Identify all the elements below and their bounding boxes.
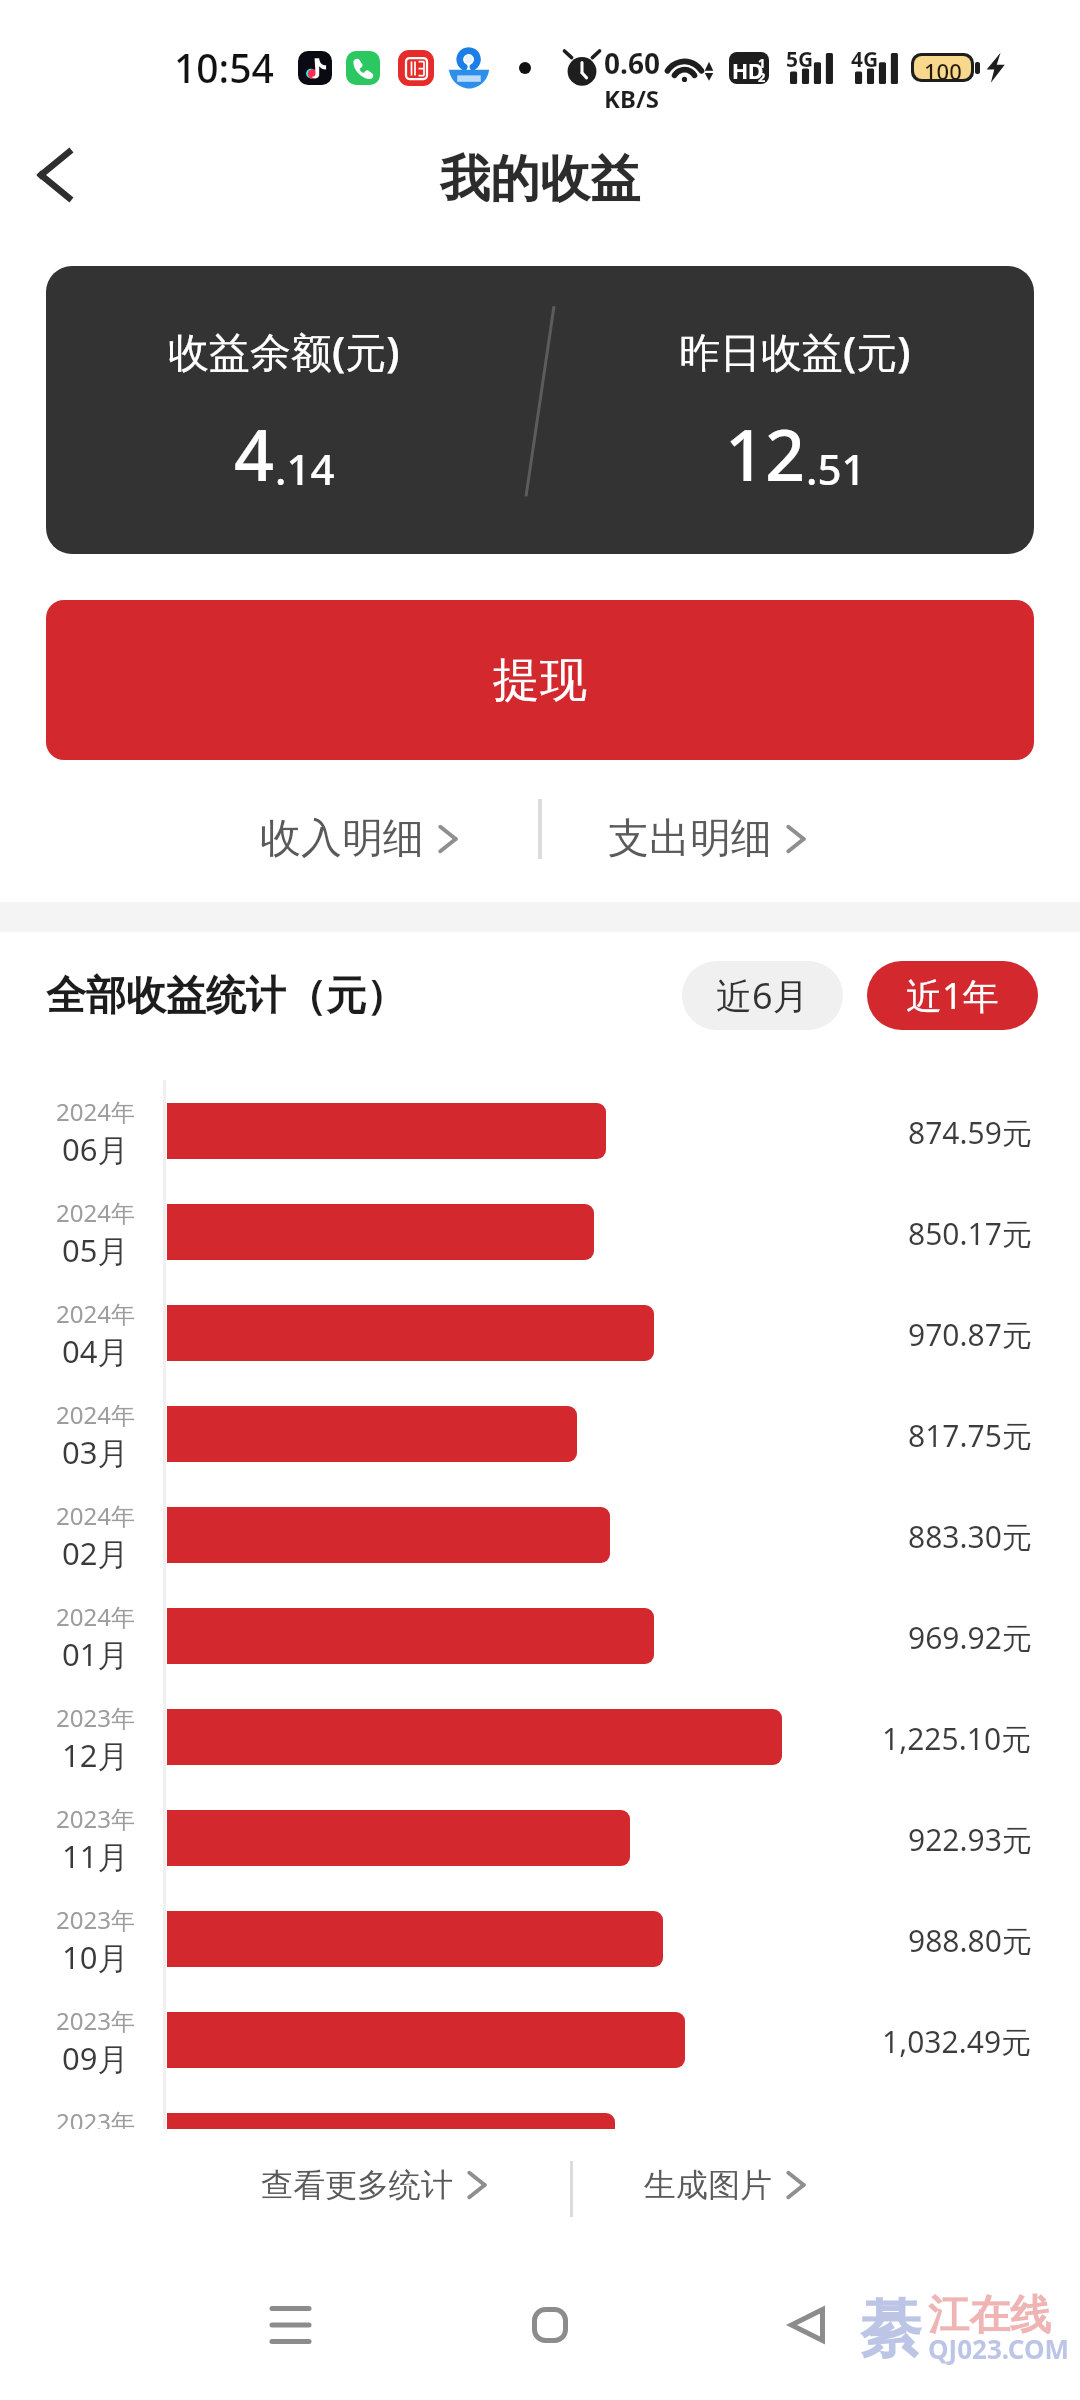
staticText: 4G [851, 45, 879, 74]
staticText: 2024年 [56, 1196, 135, 1229]
staticText: 100 [924, 56, 962, 79]
staticText: HD [732, 57, 764, 84]
button[interactable]: 生成图片 [628, 2153, 824, 2217]
staticText: 生成图片 [644, 2165, 772, 2205]
staticText: 02月 [62, 1532, 129, 1574]
staticText: 05月 [62, 1229, 129, 1271]
staticText: 近1年 [906, 971, 999, 1020]
staticText: 12月 [62, 1734, 129, 1776]
staticText: 970.87元 [908, 1314, 1032, 1355]
staticText: 1,032.49元 [882, 2021, 1032, 2062]
staticText: 4 [234, 406, 275, 501]
button[interactable]: 查看更多统计 [245, 2153, 505, 2217]
staticText: 5G [786, 45, 814, 74]
staticText: KB/S [604, 82, 660, 115]
staticText: 昨日收益(元) [679, 323, 911, 379]
staticText: 06月 [62, 1128, 129, 1170]
button[interactable]: Recent apps [240, 2275, 340, 2375]
staticText: 2 [758, 68, 766, 84]
staticText: 1,225.10元 [882, 1718, 1032, 1759]
staticText: 查看更多统计 [261, 2165, 453, 2205]
button[interactable]: 近1年 [867, 961, 1038, 1030]
staticText: 03月 [62, 1431, 129, 1473]
staticText: 10月 [62, 1936, 129, 1978]
staticText: 我的收益 [440, 148, 640, 211]
staticText: 0.60 [604, 44, 660, 82]
button[interactable]: 支出明细 [592, 801, 824, 877]
button[interactable]: 提现 [46, 600, 1034, 760]
staticText: 883.30元 [908, 1516, 1032, 1557]
staticText: 969.92元 [908, 1617, 1032, 1658]
button[interactable]: Home [500, 2275, 600, 2375]
staticText: 988.80元 [908, 1920, 1032, 1961]
button[interactable]: Back [757, 2275, 857, 2375]
staticText: 收入明细 [260, 813, 424, 865]
staticText: 江在线 [928, 2290, 1051, 2342]
staticText: .51 [806, 440, 866, 497]
staticText: 收益余额(元) [168, 323, 400, 379]
staticText: 1 [758, 54, 766, 72]
staticText: .14 [275, 440, 335, 497]
staticText: 2024年 [56, 1297, 135, 1330]
staticText: 12 [725, 406, 806, 501]
staticText: 09月 [62, 2037, 129, 2079]
button[interactable]: Back [0, 120, 110, 230]
staticText: 2023年 [56, 1701, 135, 1734]
staticText: 支出明细 [608, 813, 772, 865]
staticText: 817.75元 [908, 1415, 1032, 1456]
staticText: 04月 [62, 1330, 129, 1372]
staticText: 提现 [493, 651, 587, 710]
staticText: 874.59元 [908, 1112, 1032, 1153]
staticText: 2024年 [56, 1600, 135, 1633]
staticText: 2024年 [56, 1095, 135, 1128]
staticText: 2024年 [56, 1499, 135, 1532]
staticText: QJ023.COM [928, 2331, 1070, 2366]
staticText: 2023年 [56, 2004, 135, 2037]
staticText: 2023年 [56, 1802, 135, 1835]
staticText: 850.17元 [908, 1213, 1032, 1254]
staticText: 全部收益统计（元） [46, 970, 406, 1020]
staticText: 01月 [62, 1633, 129, 1675]
button[interactable]: 近6月 [682, 961, 843, 1030]
staticText: 2024年 [56, 1398, 135, 1431]
staticText: 近6月 [716, 971, 809, 1020]
staticText: 922.93元 [908, 1819, 1032, 1860]
staticText: 10:54 [174, 41, 274, 94]
staticText: 2023年 [56, 2105, 135, 2129]
staticText: 11月 [62, 1835, 129, 1877]
staticText: 2023年 [56, 1903, 135, 1936]
button[interactable]: 收入明细 [244, 801, 476, 877]
staticText: 綦 [860, 2290, 922, 2368]
